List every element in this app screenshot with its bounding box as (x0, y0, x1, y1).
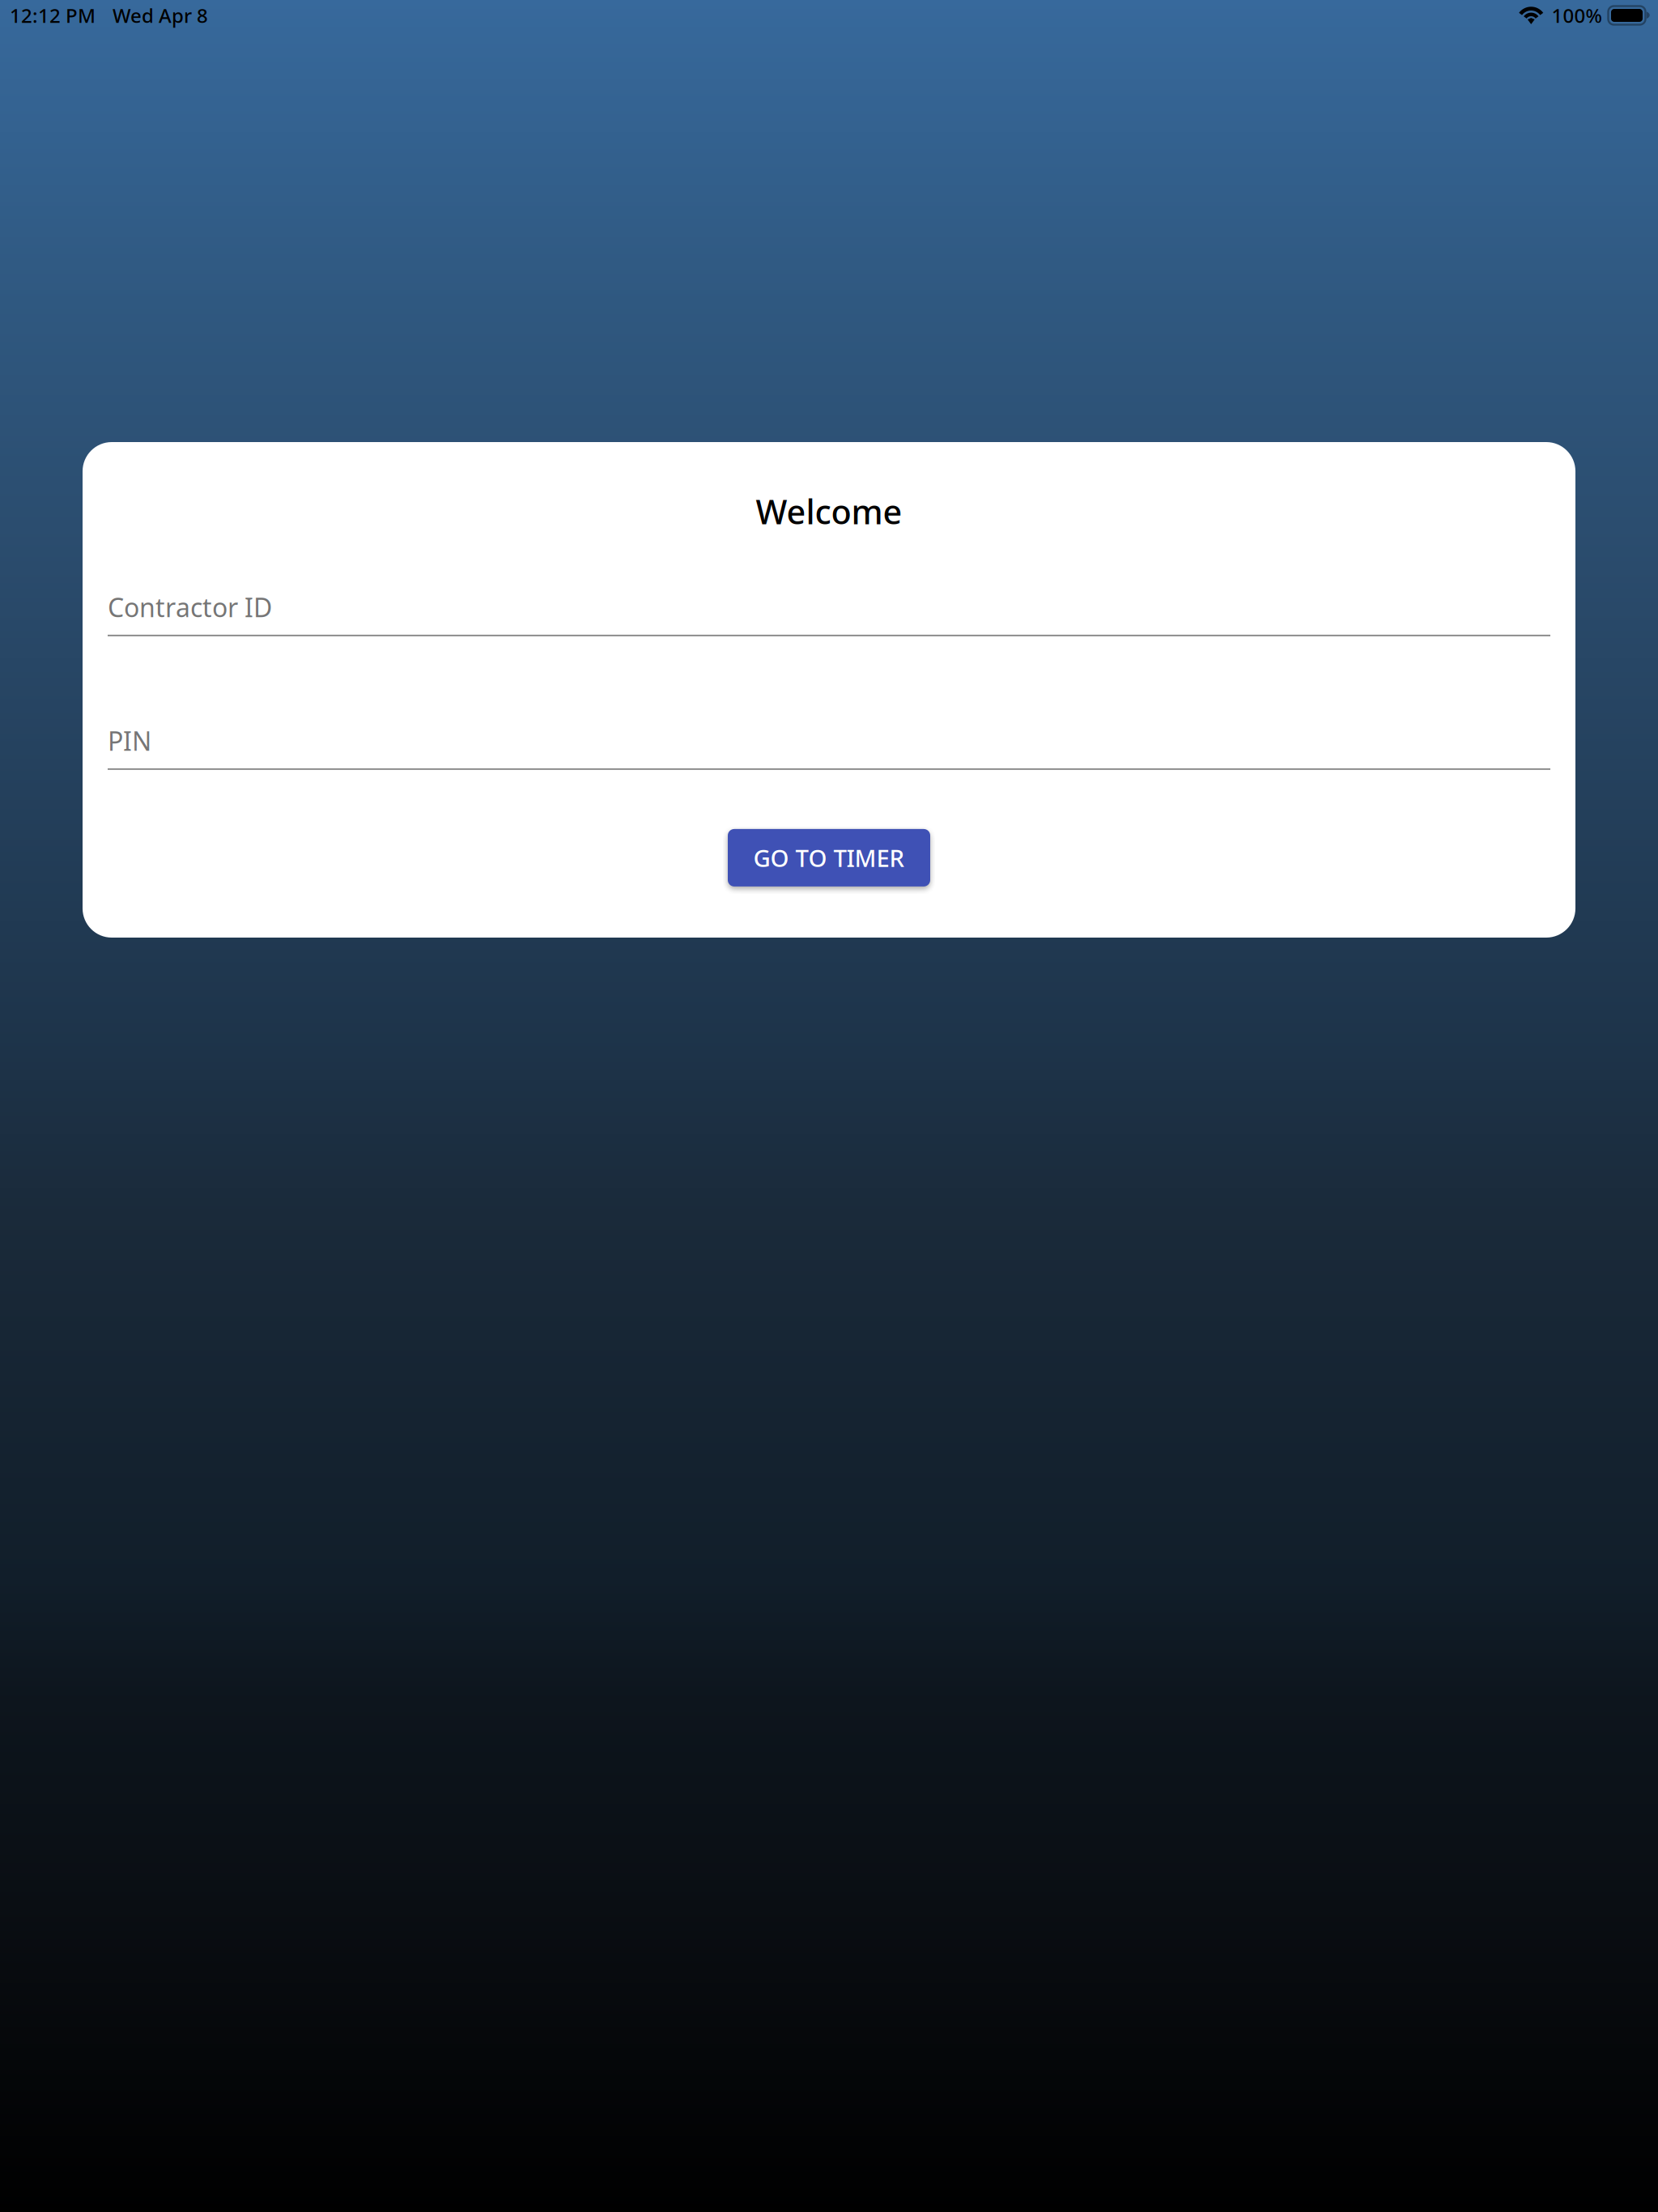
staticText: PIN (108, 724, 151, 758)
staticText: 100% (1552, 3, 1602, 28)
staticText: Wed Apr 8 (113, 3, 208, 28)
button[interactable]: PIN (108, 728, 1550, 770)
button[interactable]: Contractor ID (108, 594, 1550, 636)
staticText: 12:12 PM (10, 3, 96, 28)
button[interactable]: GO TO TIMER (728, 829, 930, 887)
staticText: Contractor ID (108, 590, 272, 624)
staticText: Welcome (756, 489, 902, 533)
staticText: GO TO TIMER (753, 842, 905, 874)
